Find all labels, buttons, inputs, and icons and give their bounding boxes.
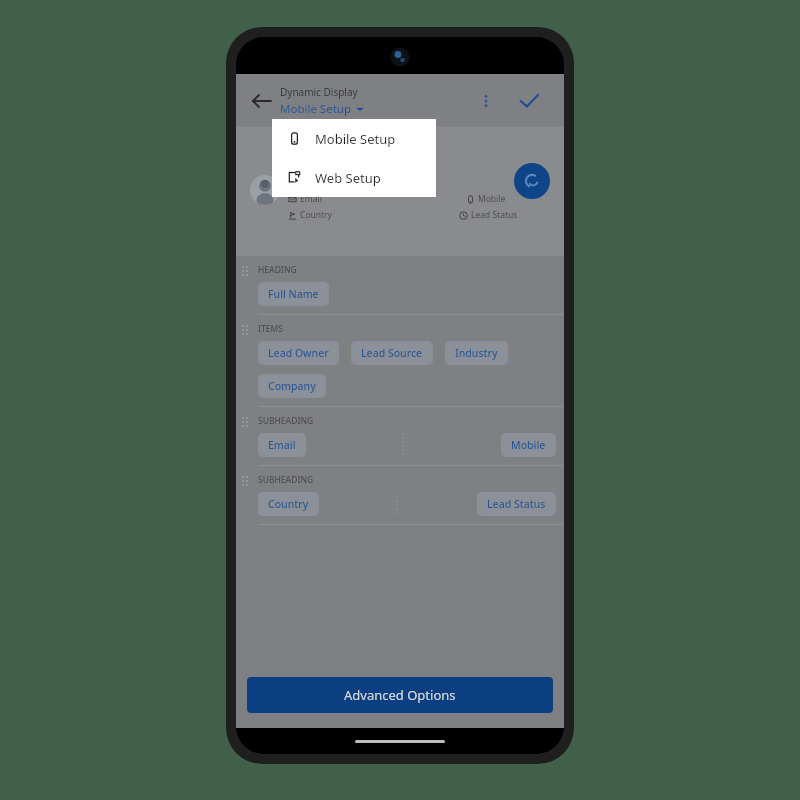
button[interactable]: Mobile Setup — [280, 101, 364, 117]
staticText: ITEMS — [258, 323, 283, 335]
button[interactable]: Country — [258, 492, 319, 516]
button[interactable]: Email — [258, 433, 306, 457]
button[interactable]: Mobile Setup — [272, 119, 436, 158]
staticText: Lead Source — [300, 162, 349, 174]
button[interactable]: Done — [514, 86, 544, 116]
button[interactable]: Back — [248, 87, 276, 115]
staticText: Lead Status — [471, 209, 518, 221]
staticText: HEADING — [258, 264, 297, 276]
button[interactable]: Industry — [445, 341, 508, 365]
button[interactable]: Lead Owner — [258, 341, 339, 365]
staticText: Country — [300, 209, 332, 221]
staticText: Mobile Setup — [315, 130, 396, 148]
button[interactable]: Mobile — [501, 433, 556, 457]
button[interactable]: Web Setup — [272, 158, 436, 197]
button[interactable]: More options — [473, 88, 499, 114]
staticText: Industry — [455, 346, 498, 360]
staticText: Country — [268, 497, 309, 511]
staticText: Email — [268, 438, 296, 452]
staticText: Lead Status — [487, 497, 546, 511]
button[interactable]: Full Name — [258, 282, 329, 306]
button[interactable]: Company — [258, 374, 326, 398]
staticText: Company — [268, 379, 316, 393]
staticText: Dynamic Display — [280, 85, 358, 99]
staticText: Mobile — [511, 438, 546, 452]
staticText: Web Setup — [315, 169, 381, 187]
staticText: Industry — [300, 177, 334, 189]
button[interactable]: Advanced Options — [247, 677, 553, 713]
button[interactable]: Lead Status — [477, 492, 556, 516]
staticText: Full Name — [268, 287, 319, 301]
staticText: SUBHEADING — [258, 415, 314, 427]
staticText: Lead Owner — [268, 346, 329, 360]
staticText: Email — [300, 193, 322, 205]
staticText: Lead Source — [361, 346, 423, 360]
staticText: Advanced Options — [344, 686, 456, 704]
button[interactable]: Call — [514, 163, 550, 199]
staticText: Company — [368, 177, 407, 189]
button[interactable]: Lead Source — [351, 341, 433, 365]
staticText: SUBHEADING — [258, 474, 314, 486]
staticText: Mobile — [478, 193, 506, 205]
staticText: Mobile Setup — [280, 101, 352, 117]
